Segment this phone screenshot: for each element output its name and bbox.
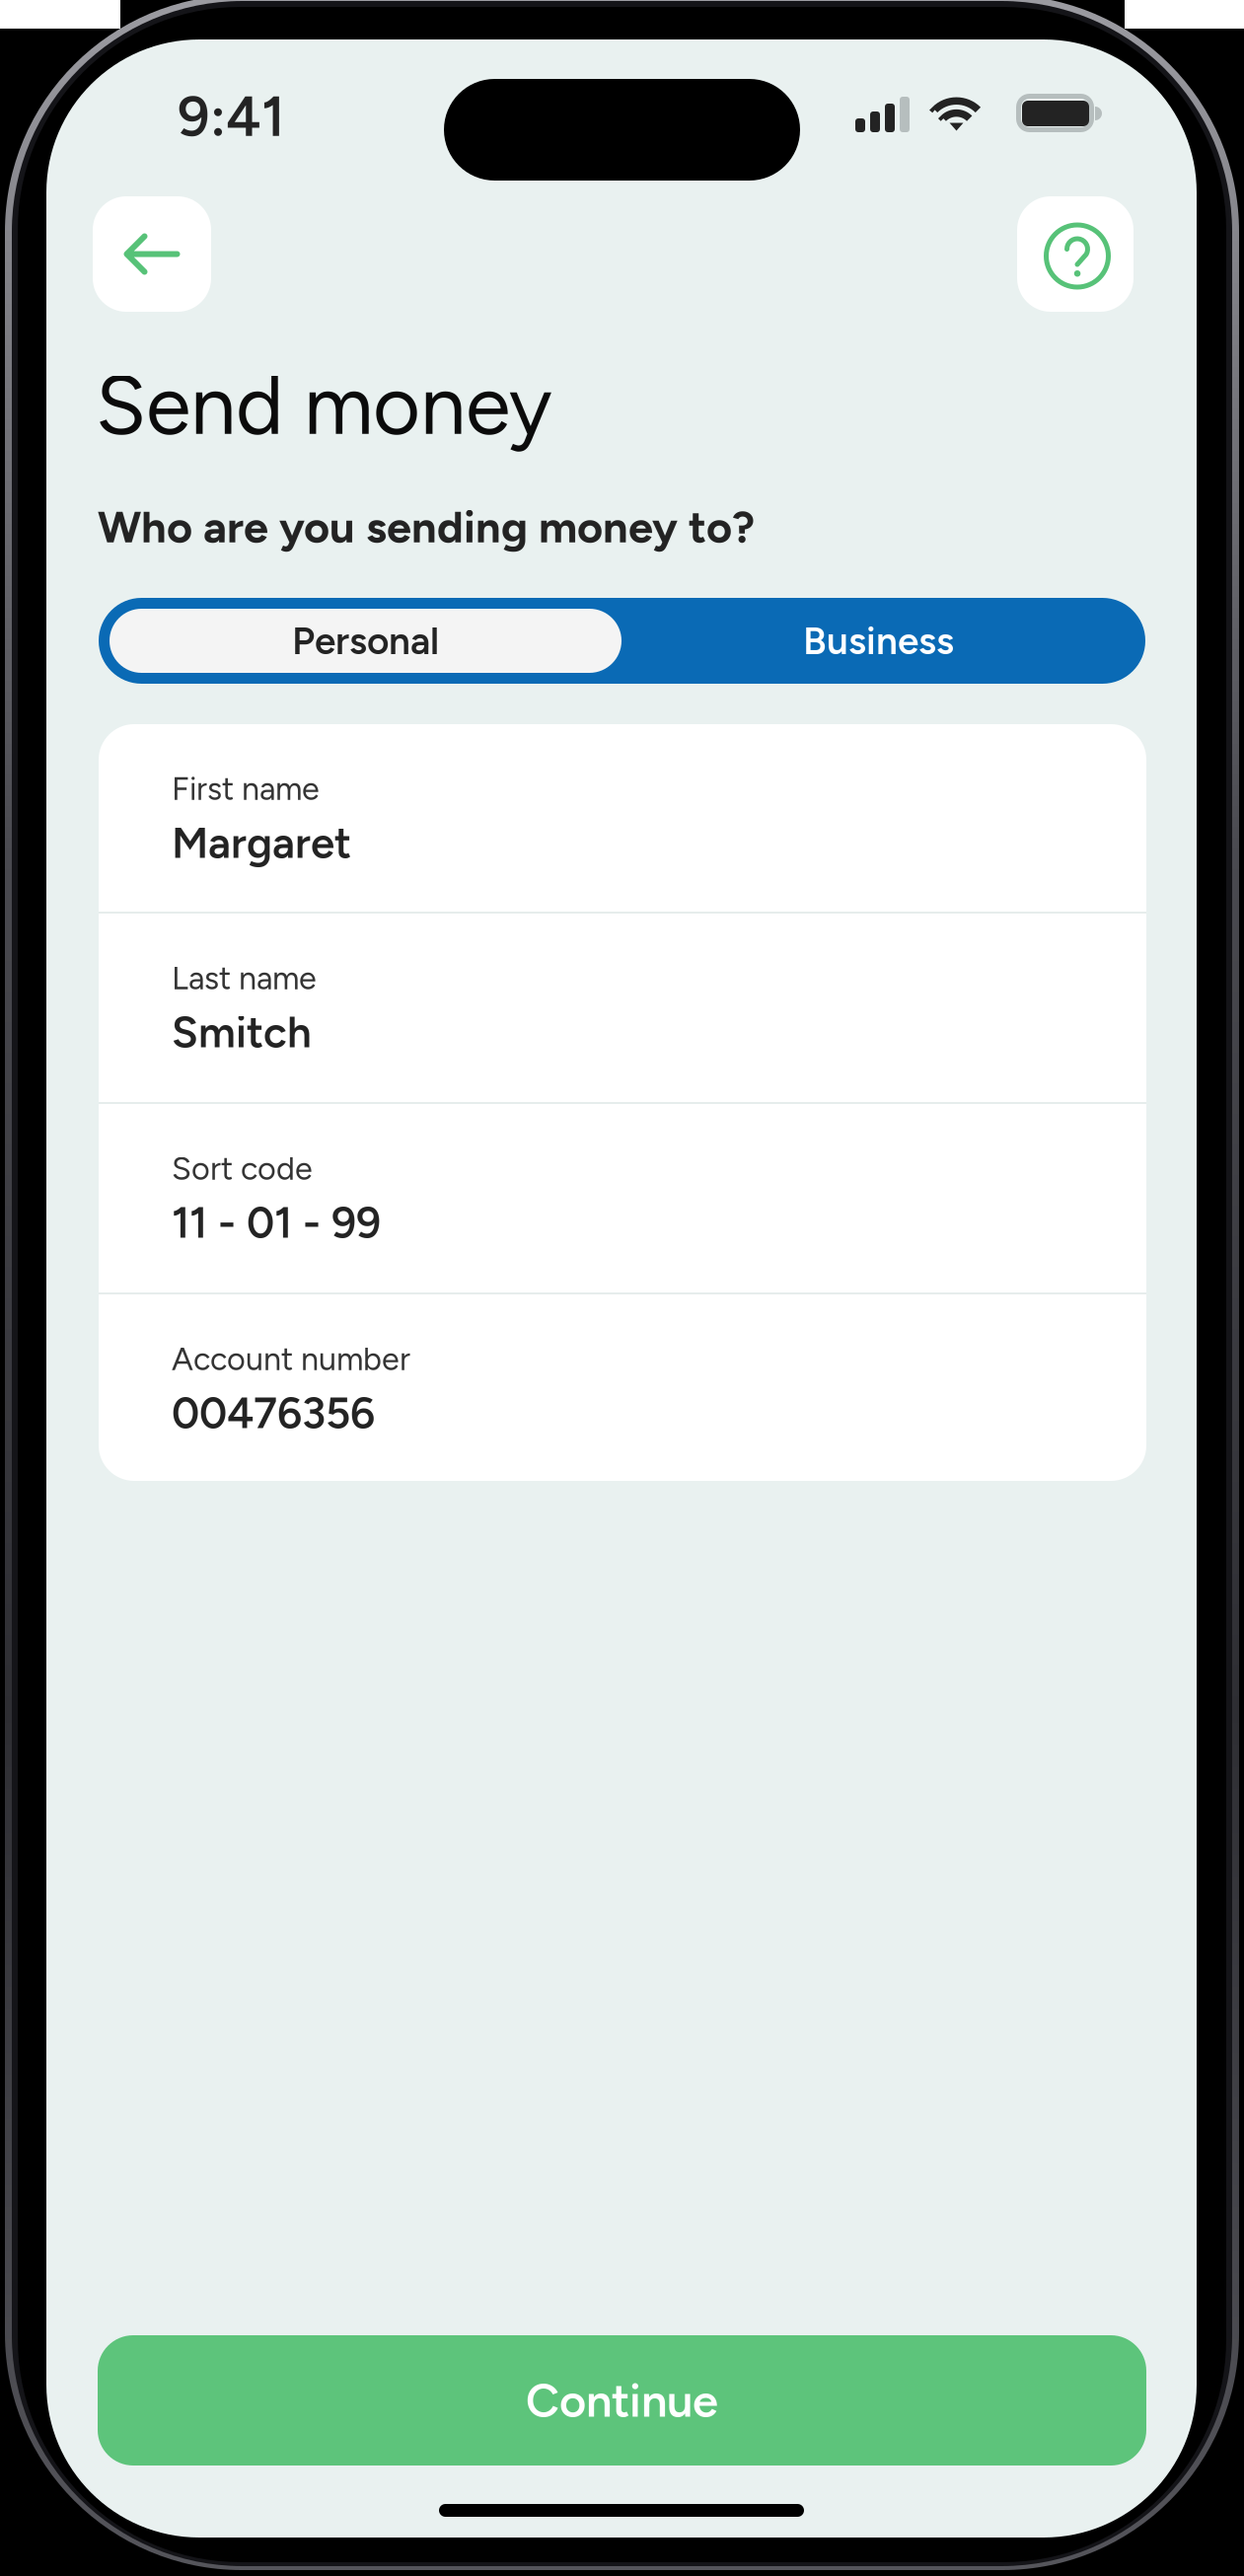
staticText: Send money <box>96 356 552 454</box>
button[interactable]: Continue <box>98 2335 1146 2466</box>
button[interactable]: Personal <box>110 609 622 673</box>
staticText: Last name <box>172 959 317 997</box>
staticText: Sort code <box>172 1149 313 1188</box>
staticText: Smitch <box>172 1006 312 1058</box>
button[interactable]: Back <box>93 196 211 312</box>
staticText: Continue <box>526 2373 718 2428</box>
staticText: Personal <box>292 618 439 664</box>
button[interactable]: Help <box>1017 196 1134 312</box>
button[interactable]: Business <box>622 609 1134 673</box>
staticText: First name <box>172 770 320 808</box>
staticText: 9:41 <box>178 83 285 150</box>
staticText: Margaret <box>172 817 351 869</box>
staticText: 11 - 01 - 99 <box>172 1197 381 1249</box>
staticText: 00476356 <box>172 1387 375 1439</box>
staticText: Who are you sending money to? <box>98 500 755 553</box>
staticText: Business <box>803 618 954 664</box>
staticText: Account number <box>172 1340 410 1378</box>
